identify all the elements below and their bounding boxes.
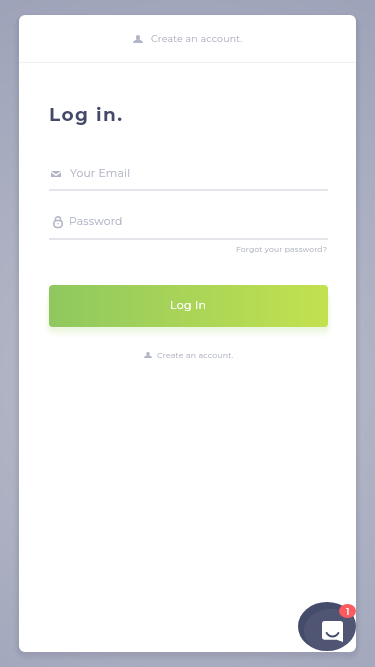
staticText: Log In [170, 298, 207, 311]
staticText: 1 [346, 606, 350, 617]
button[interactable]: Create an account. [49, 345, 328, 364]
button[interactable]: Create an account. [19, 15, 356, 62]
staticText: Your Email [70, 167, 131, 180]
button[interactable]: Open chat [298, 602, 356, 651]
button[interactable]: Log In [49, 285, 328, 327]
staticText: Log in. [49, 103, 124, 126]
staticText: Password [69, 215, 123, 228]
button[interactable]: Forgot your password? [236, 245, 328, 254]
staticText: Create an account. [157, 350, 234, 360]
staticText: Create an account. [151, 33, 243, 44]
